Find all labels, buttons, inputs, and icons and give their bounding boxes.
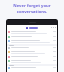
staticText: Never forget your bbox=[0, 3, 64, 9]
button[interactable]: Conversation avatar bbox=[7, 66, 57, 70]
button[interactable]: Conversation avatar bbox=[7, 46, 57, 50]
button[interactable]: Conversation avatar bbox=[7, 50, 57, 55]
staticText: conversations. bbox=[0, 9, 64, 15]
other: App logo bbox=[26, 27, 28, 29]
button[interactable]: Conversation avatar bbox=[7, 39, 57, 44]
button[interactable]: Conversation avatar bbox=[7, 55, 57, 59]
button[interactable]: Conversation avatar bbox=[7, 35, 57, 39]
button[interactable]: Conversation avatar bbox=[7, 30, 57, 35]
button[interactable]: App logo bbox=[7, 25, 57, 30]
button[interactable]: More options bbox=[51, 27, 56, 28]
button[interactable]: App logo bbox=[7, 20, 57, 72]
button[interactable]: Conversation avatar bbox=[7, 59, 57, 64]
